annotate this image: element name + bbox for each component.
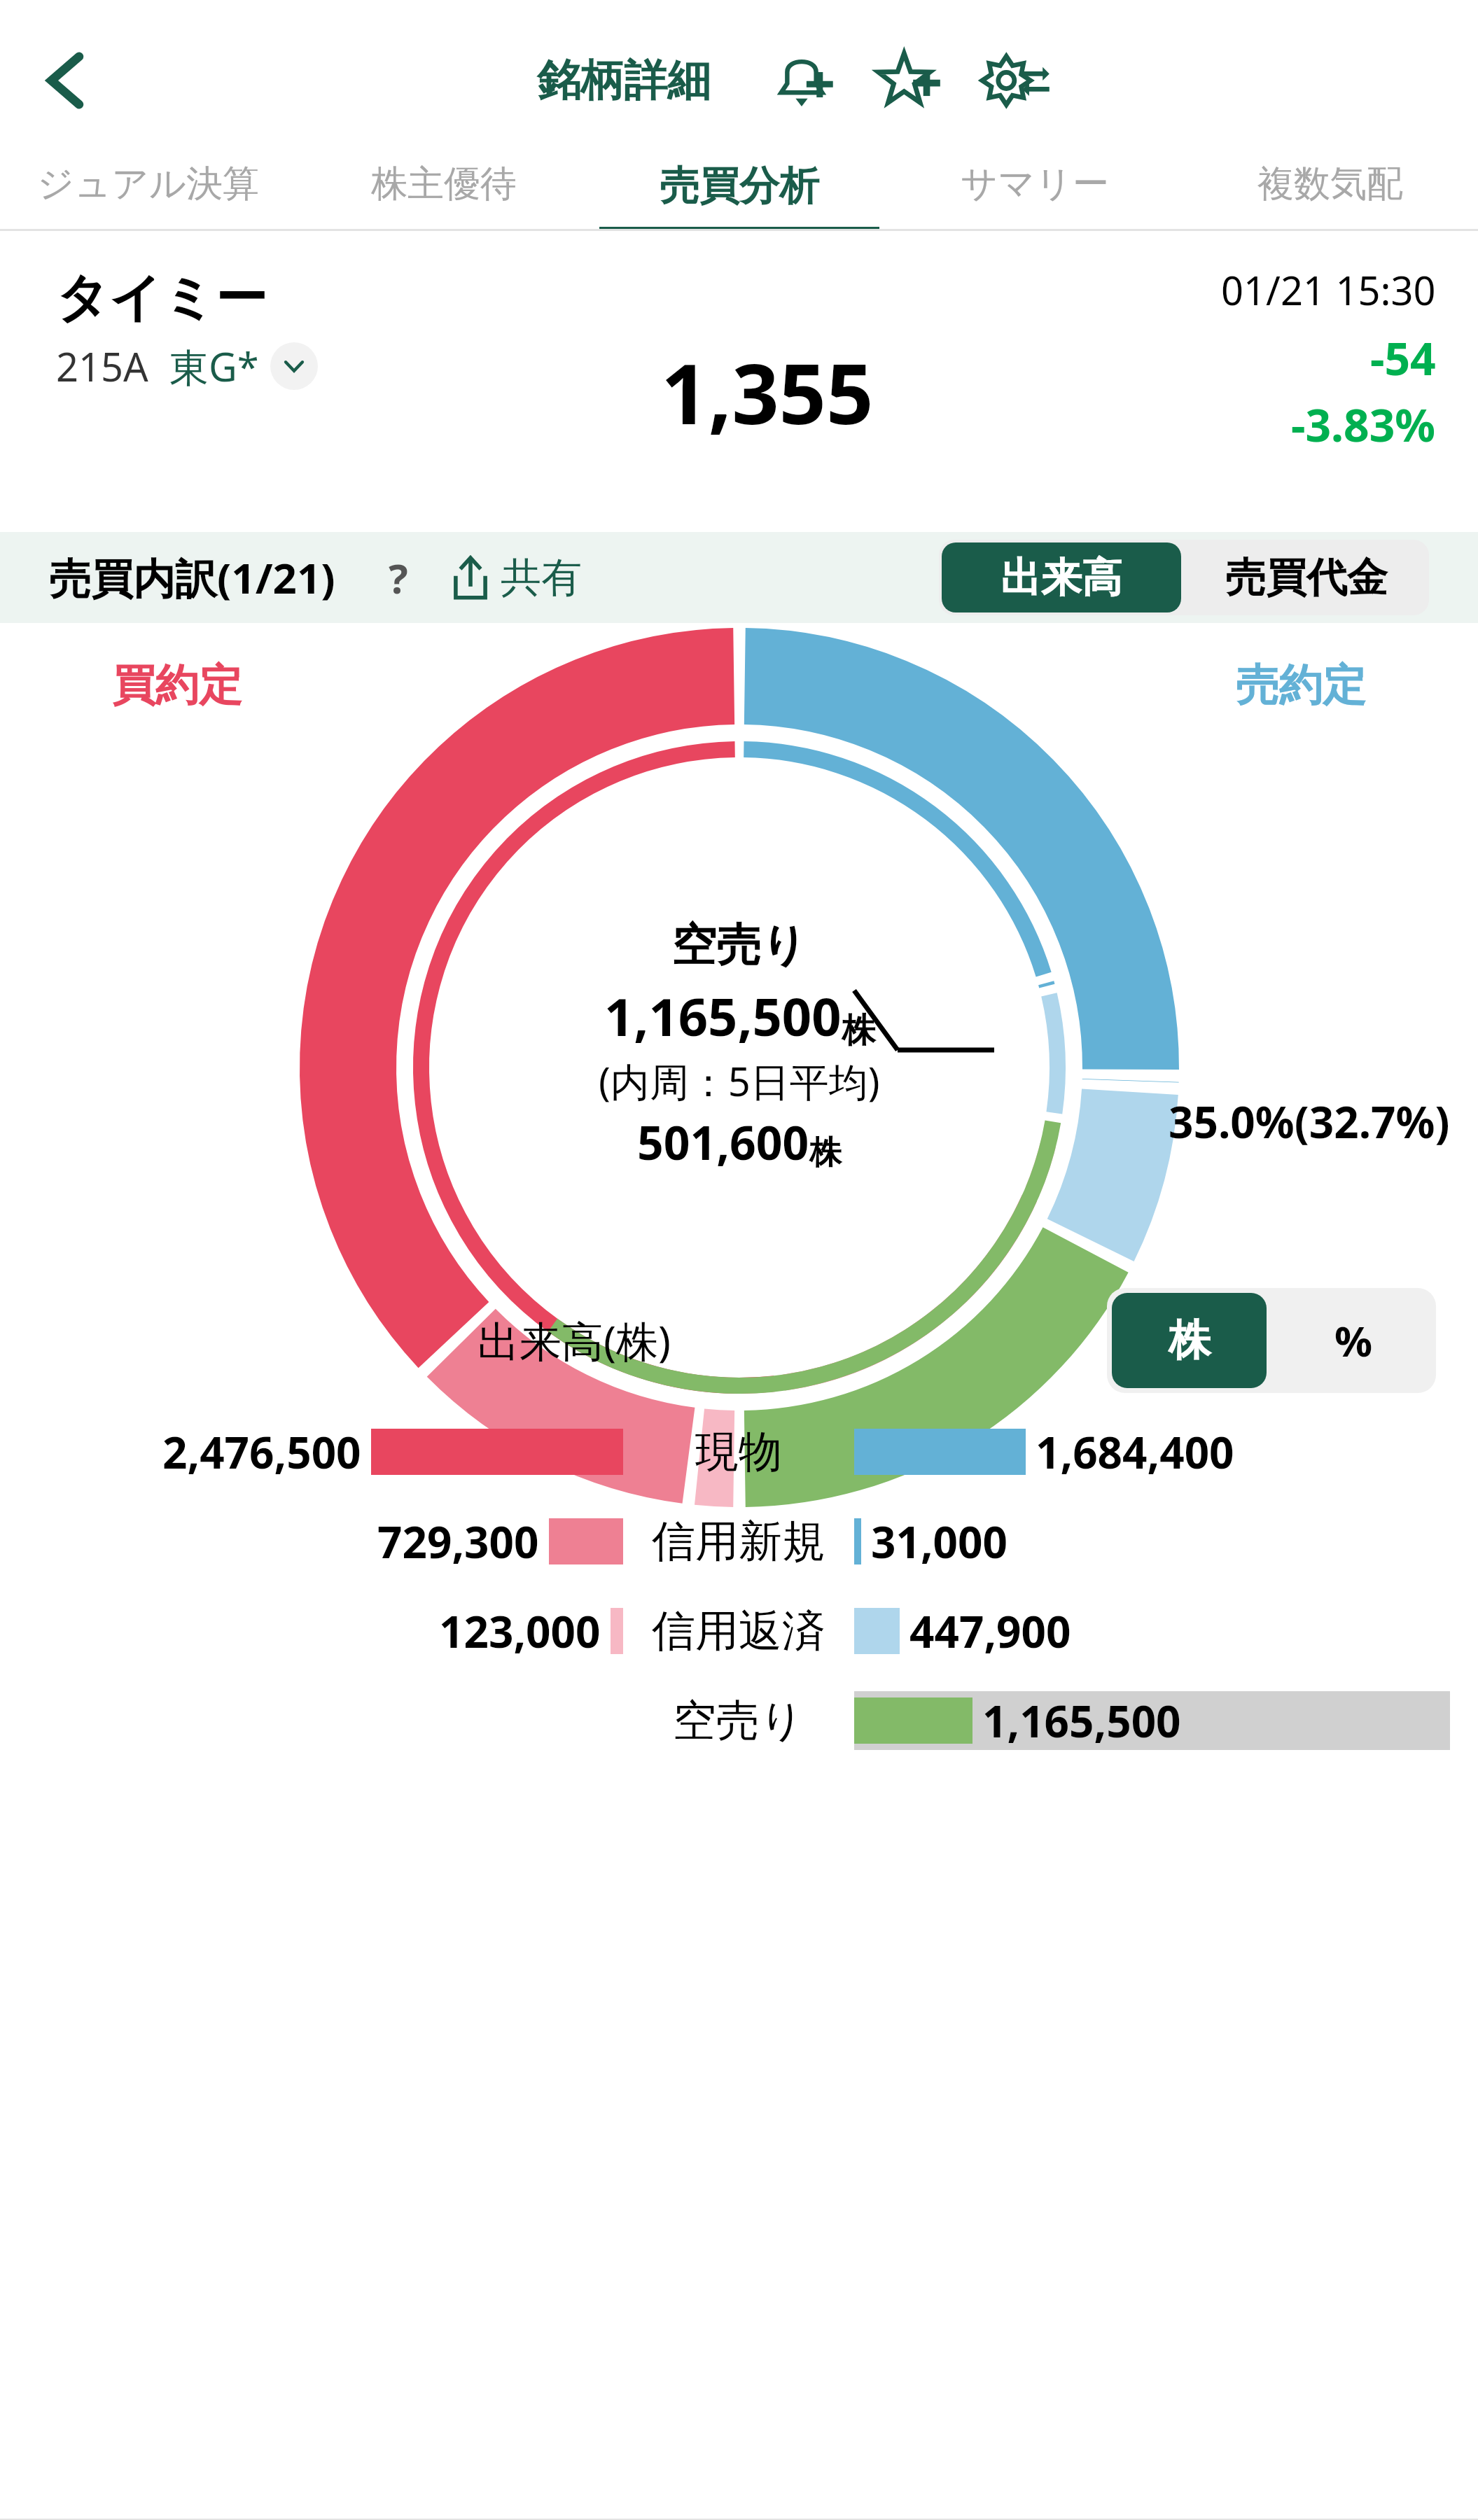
button[interactable]: 123,000: [28, 1586, 1450, 1676]
staticText: 1,165,500: [604, 981, 842, 1051]
staticText: 買約定: [112, 658, 242, 713]
button[interactable]: 空売り: [28, 1676, 1450, 1765]
button[interactable]: Expand market: [270, 342, 318, 390]
button[interactable]: 売買代金: [1184, 540, 1429, 615]
staticText: 売買内訳(1/21): [49, 549, 335, 606]
button[interactable]: 共有: [447, 552, 582, 603]
staticText: 東G*: [169, 339, 259, 393]
staticText: 現物: [695, 1424, 782, 1479]
button[interactable]: 729,300: [28, 1497, 1450, 1586]
button[interactable]: Add to favourites: [865, 38, 949, 122]
staticText: 売買分析: [660, 161, 819, 211]
staticText: 株: [842, 1009, 875, 1051]
button[interactable]: %: [1271, 1288, 1436, 1393]
staticText: 株主優待: [371, 161, 517, 207]
staticText: 01/21 15:30: [1221, 263, 1436, 316]
staticText: 31,000: [871, 1512, 1008, 1571]
button[interactable]: 出来高: [942, 542, 1181, 612]
staticText: -3.83%: [1291, 394, 1436, 455]
staticText: ジュアル決算: [37, 161, 259, 207]
button[interactable]: Back: [21, 35, 112, 126]
staticText: 売約定: [1236, 658, 1366, 713]
staticText: 株: [809, 1133, 842, 1173]
staticText: 1,165,500: [982, 1691, 1181, 1750]
button[interactable]: Add alert: [760, 38, 844, 122]
staticText: 215A: [56, 339, 148, 393]
staticText: 銘柄詳細: [537, 53, 711, 108]
staticText: 売買代金: [1225, 552, 1388, 603]
staticText: 株: [1169, 1314, 1211, 1367]
staticText: サマリー: [961, 161, 1109, 207]
staticText: 35.0%(32.7%): [1169, 1092, 1450, 1151]
staticText: 信用返済: [652, 1604, 825, 1658]
staticText: 出来高: [1001, 552, 1122, 603]
staticText: 729,300: [377, 1512, 539, 1571]
staticText: 123,000: [439, 1602, 601, 1660]
staticText: 1,684,400: [1036, 1422, 1234, 1481]
button[interactable]: 株: [1112, 1293, 1267, 1388]
staticText: 2,476,500: [162, 1422, 361, 1481]
staticText: 出来高(株): [477, 1312, 671, 1369]
button[interactable]: ジュアル決算: [0, 140, 296, 231]
staticText: ?: [389, 550, 408, 605]
staticText: 447,900: [909, 1602, 1071, 1660]
staticText: 共有: [501, 552, 582, 603]
button[interactable]: サマリー: [887, 140, 1183, 231]
staticText: -54: [1370, 328, 1436, 388]
staticText: %: [1334, 1312, 1373, 1369]
button[interactable]: 株主優待: [296, 140, 592, 231]
button[interactable]: 売買分析: [592, 140, 887, 231]
staticText: 1,355: [661, 336, 874, 449]
staticText: 信用新規: [652, 1514, 825, 1569]
button[interactable]: 2,476,500: [28, 1407, 1450, 1497]
staticText: 501,600: [637, 1110, 809, 1173]
button[interactable]: Settings: [970, 38, 1054, 122]
staticText: 空売り: [673, 1693, 804, 1748]
staticText: 複数気配: [1257, 161, 1403, 207]
staticText: 空売り: [671, 917, 807, 974]
button[interactable]: 複数気配: [1183, 140, 1478, 231]
button[interactable]: Help: [370, 549, 426, 605]
staticText: (内周：5日平均): [599, 1054, 880, 1107]
staticText: タイミー: [56, 266, 267, 331]
